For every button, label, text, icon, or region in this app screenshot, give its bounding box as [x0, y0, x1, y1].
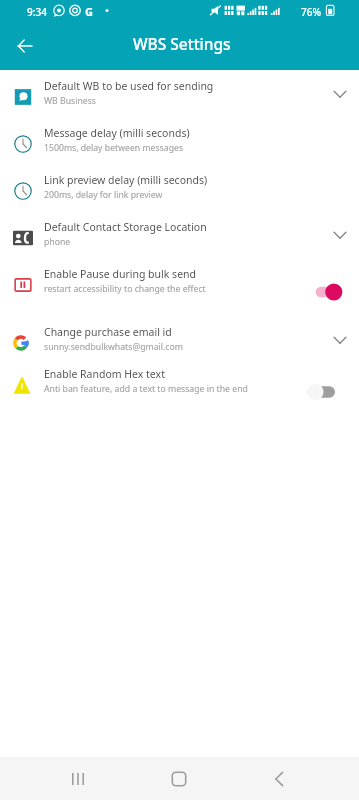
staticText: 76%: [301, 5, 321, 19]
staticText: Anti ban feature, add a text to message …: [44, 383, 248, 395]
button[interactable]: Back: [251, 757, 305, 800]
staticText: Message delay (milli seconds): [44, 126, 190, 140]
staticText: Enable Pause during bulk send: [44, 267, 197, 281]
staticText: 1500ms, delay between messages: [44, 142, 184, 154]
staticText: 9:34: [27, 5, 47, 19]
button[interactable]: Expand: [329, 224, 351, 246]
staticText: WB Business: [44, 95, 96, 107]
button[interactable]: Home: [152, 757, 206, 800]
button[interactable]: Enable Random Hex text toggle: [305, 382, 357, 402]
button[interactable]: Link preview delay (milli seconds): [0, 156, 359, 200]
staticText: sunny.sendbulkwhats@gmail.com: [44, 341, 183, 353]
button[interactable]: Enable Pause during bulk send: [0, 250, 359, 294]
staticText: restart accessibility to change the effe…: [44, 283, 206, 295]
staticText: WBS Settings: [133, 33, 231, 54]
staticText: Default Contact Storage Location: [44, 220, 207, 234]
staticText: Change purchase email id: [44, 325, 172, 339]
button[interactable]: Back: [7, 28, 43, 64]
button[interactable]: Expand: [329, 329, 351, 351]
button[interactable]: Message delay (milli seconds): [0, 109, 359, 153]
staticText: Link preview delay (milli seconds): [44, 173, 208, 187]
button[interactable]: Enable Pause during bulk send toggle: [313, 282, 357, 302]
staticText: phone: [44, 236, 71, 248]
button[interactable]: Enable Random Hex text: [0, 350, 359, 394]
staticText: 200ms, delay for link preview: [44, 189, 163, 201]
staticText: G: [85, 4, 93, 19]
button[interactable]: Default Contact Storage Location: [0, 203, 359, 247]
button[interactable]: Recent apps: [51, 757, 105, 800]
staticText: Enable Random Hex text: [44, 367, 165, 381]
button[interactable]: Default WB to be used for sending: [0, 62, 359, 106]
button[interactable]: Expand: [329, 83, 351, 105]
staticText: Default WB to be used for sending: [44, 79, 214, 93]
button[interactable]: Change purchase email id: [0, 308, 359, 352]
